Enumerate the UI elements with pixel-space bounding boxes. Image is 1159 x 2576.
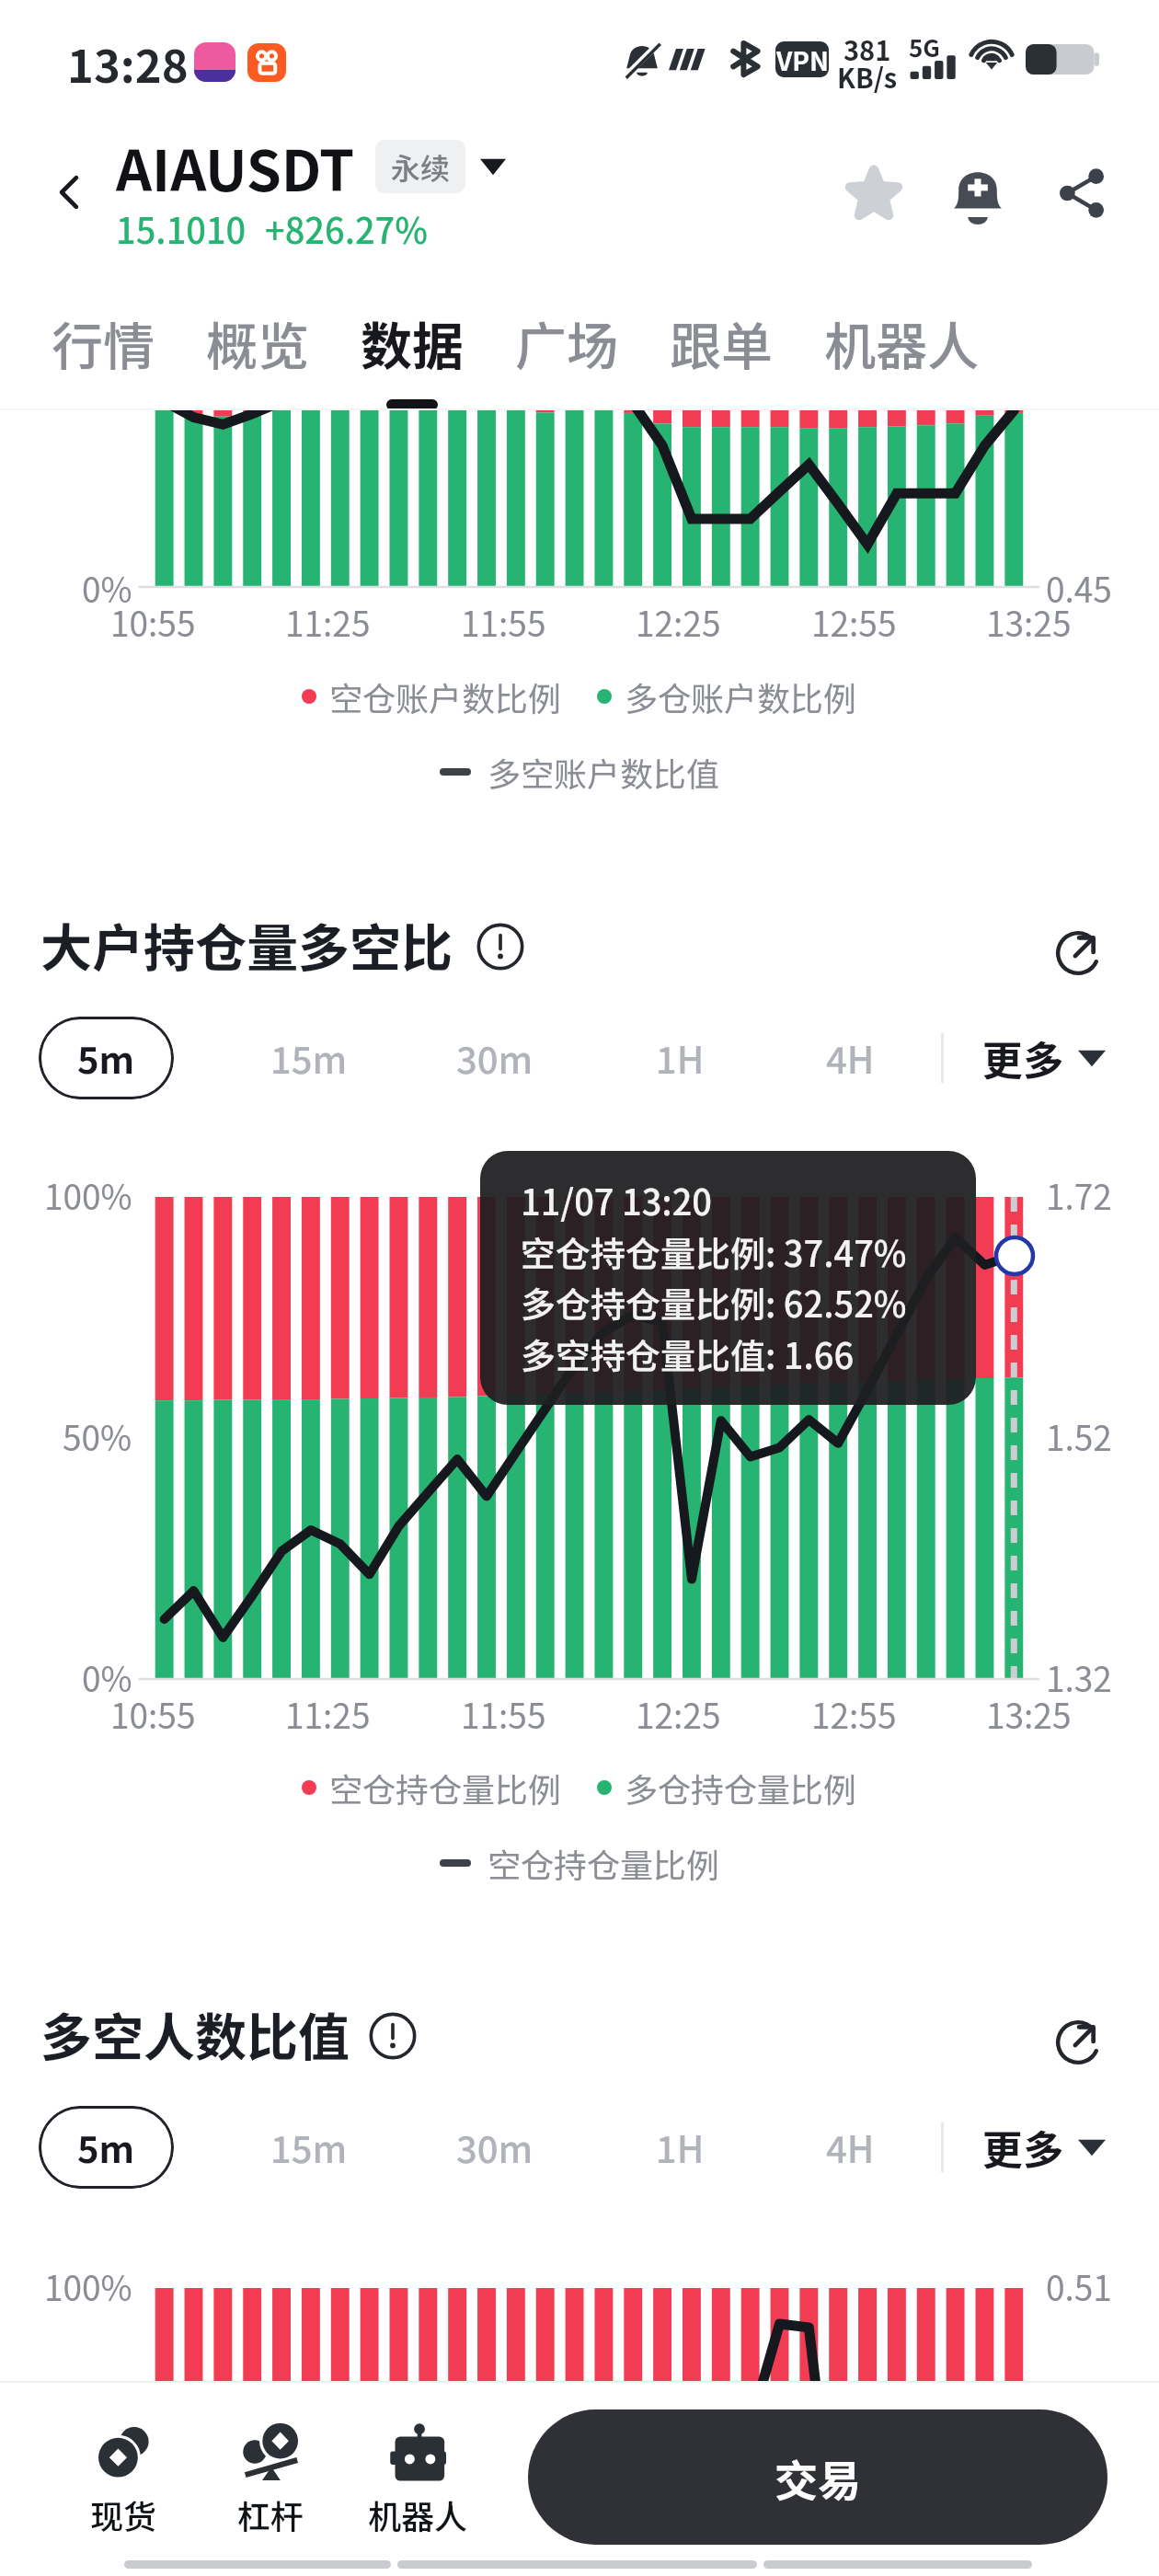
- staticText: 15.1010: [116, 203, 247, 254]
- staticText: 1H: [656, 2121, 705, 2174]
- staticText: 现货: [90, 2490, 157, 2538]
- staticText: 10:55: [110, 597, 196, 647]
- staticText: 11:25: [285, 1689, 371, 1739]
- staticText: 空仓持仓量比例: [488, 1839, 720, 1887]
- staticText: 更多: [982, 2118, 1063, 2177]
- staticText: 多仓持仓量比例: [625, 1764, 857, 1811]
- staticText: 11:55: [461, 1689, 546, 1739]
- staticText: 12:55: [811, 597, 897, 647]
- staticText: 30m: [456, 2121, 534, 2174]
- staticText: 空仓持仓量比例: 37.47%: [521, 1226, 907, 1277]
- staticText: 30m: [456, 1031, 534, 1085]
- staticText: 5m: [77, 2121, 135, 2174]
- staticText: 多空账户数比值: [488, 748, 720, 796]
- button[interactable]: Open full chart: [1036, 2000, 1120, 2085]
- staticText: 机器人: [824, 305, 979, 380]
- staticText: 多空持仓量比值: 1.66: [521, 1328, 855, 1379]
- staticText: 1H: [656, 1031, 705, 1085]
- staticText: 11/07 13:20: [521, 1175, 712, 1225]
- button[interactable]: 多空人数比值: [18, 1990, 368, 2076]
- staticText: 5m: [77, 1031, 135, 1085]
- staticText: 交易: [775, 2446, 861, 2509]
- staticText: KB/s: [837, 57, 898, 96]
- button[interactable]: 15m: [240, 1017, 378, 1099]
- button[interactable]: Price alert: [934, 149, 1022, 237]
- staticText: 跟单: [670, 305, 773, 380]
- button[interactable]: Share: [1038, 149, 1126, 237]
- staticText: 13:25: [986, 1689, 1072, 1739]
- button[interactable]: 5m: [39, 2106, 174, 2189]
- button[interactable]: Favorite: [830, 149, 918, 237]
- staticText: 12:55: [811, 1689, 897, 1739]
- staticText: 13:25: [986, 597, 1072, 647]
- staticText: 1.52: [1046, 1411, 1112, 1461]
- staticText: 0.45: [1046, 563, 1112, 613]
- staticText: 0%: [82, 563, 132, 613]
- staticText: 更多: [982, 1029, 1063, 1087]
- staticText: 永续: [391, 145, 451, 188]
- button[interactable]: 4H: [781, 2106, 919, 2189]
- button[interactable]: Back: [39, 162, 99, 223]
- button[interactable]: 大户持仓量多空比: [18, 901, 471, 987]
- button[interactable]: 30m: [426, 2106, 564, 2189]
- staticText: 4H: [826, 1031, 875, 1085]
- button[interactable]: 杠杆: [197, 2399, 344, 2556]
- button[interactable]: 行情: [26, 291, 180, 395]
- staticText: 大户持仓量多空比: [40, 907, 453, 982]
- button[interactable]: 广场: [489, 291, 644, 395]
- button[interactable]: 15m: [240, 2106, 378, 2189]
- button[interactable]: 跟单: [644, 291, 798, 395]
- staticText: 13:28: [67, 30, 189, 96]
- button[interactable]: 更多: [970, 2106, 1119, 2189]
- staticText: 空仓账户数比例: [329, 673, 562, 720]
- staticText: 数据: [361, 305, 464, 380]
- button[interactable]: 现货: [50, 2399, 197, 2556]
- staticText: 4H: [826, 2121, 875, 2174]
- staticText: 1.72: [1046, 1170, 1112, 1220]
- button[interactable]: 更多: [970, 1017, 1119, 1099]
- button[interactable]: 30m: [426, 1017, 564, 1099]
- button[interactable]: 数据: [335, 291, 489, 395]
- staticText: 多仓持仓量比例: 62.52%: [521, 1277, 907, 1328]
- button[interactable]: 4H: [781, 1017, 919, 1099]
- staticText: 概览: [206, 305, 309, 380]
- button[interactable]: 1H: [611, 1017, 749, 1099]
- staticText: 空仓持仓量比例: [329, 1764, 562, 1811]
- staticText: 11:25: [285, 597, 371, 647]
- button[interactable]: 机器人: [344, 2399, 491, 2556]
- staticText: 机器人: [368, 2490, 468, 2538]
- staticText: 100%: [44, 1170, 132, 1220]
- button[interactable]: 1H: [611, 2106, 749, 2189]
- staticText: 11:55: [461, 597, 546, 647]
- staticText: 381: [843, 29, 891, 68]
- staticText: 1.32: [1046, 1652, 1112, 1702]
- staticText: 多仓账户数比例: [625, 673, 857, 720]
- staticText: 12:25: [636, 597, 721, 647]
- staticText: VPN: [776, 41, 829, 77]
- button[interactable]: Info: [360, 2003, 426, 2069]
- staticText: 10:55: [110, 1689, 196, 1739]
- button[interactable]: 机器人: [798, 291, 1004, 395]
- staticText: AIAUSDT: [116, 126, 355, 207]
- staticText: 0%: [82, 1652, 132, 1702]
- staticText: 广场: [515, 305, 618, 380]
- button[interactable]: Open full chart: [1036, 911, 1120, 995]
- button[interactable]: 交易: [528, 2409, 1107, 2545]
- button[interactable]: Info: [467, 914, 534, 980]
- button[interactable]: 5m: [39, 1017, 174, 1099]
- staticText: 15m: [270, 2121, 348, 2174]
- staticText: 杠杆: [237, 2490, 304, 2538]
- staticText: +826.27%: [265, 203, 428, 254]
- staticText: 15m: [270, 1031, 348, 1085]
- staticText: 100%: [44, 2261, 132, 2311]
- button[interactable]: 概览: [180, 291, 335, 395]
- staticText: 行情: [52, 305, 155, 380]
- staticText: 5G: [909, 29, 940, 64]
- staticText: 0.51: [1046, 2261, 1112, 2311]
- staticText: 50%: [63, 1411, 132, 1461]
- staticText: 12:25: [636, 1689, 721, 1739]
- staticText: 多空人数比值: [40, 1996, 350, 2071]
